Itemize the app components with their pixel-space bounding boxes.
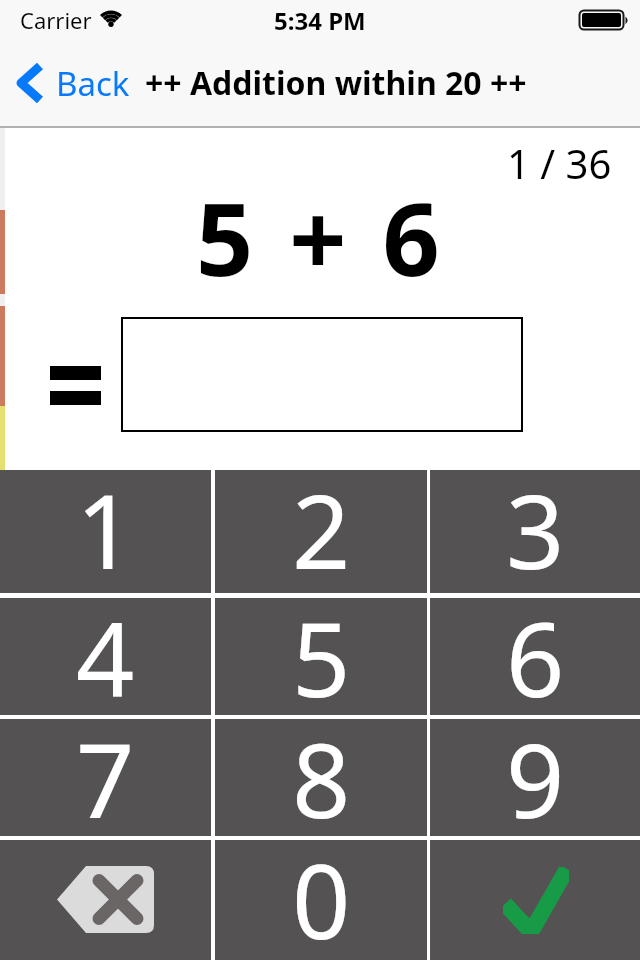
staticText: 1 / 36 (507, 136, 612, 184)
button[interactable] (430, 840, 640, 960)
button[interactable]: Back (0, 40, 145, 126)
staticText: 9 (506, 709, 565, 826)
button[interactable]: 1 (0, 470, 211, 593)
staticText: ++ Addition within 20 ++ (145, 61, 527, 105)
staticText: 5 + 6 (196, 169, 445, 289)
button[interactable]: 0 (215, 840, 427, 960)
staticText: 4 (76, 588, 135, 705)
button[interactable]: 8 (215, 719, 427, 836)
staticText: 1 (76, 460, 135, 583)
staticText: Carrier (20, 5, 92, 35)
staticText: 6 (506, 588, 565, 705)
staticText: 7 (76, 709, 135, 826)
button[interactable]: 6 (430, 598, 640, 715)
button[interactable]: 2 (215, 470, 427, 593)
staticText: 5 (292, 588, 351, 705)
staticText: 8 (292, 709, 351, 826)
button[interactable]: 5 (215, 598, 427, 715)
button[interactable] (121, 317, 523, 432)
button[interactable]: 4 (0, 598, 211, 715)
staticText: 0 (292, 830, 351, 950)
button[interactable]: 3 (430, 470, 640, 593)
staticText: Back (56, 61, 130, 106)
button[interactable] (0, 840, 211, 960)
staticText: 5:34 PM (274, 4, 366, 37)
button[interactable]: 9 (430, 719, 640, 836)
staticText: 3 (506, 460, 565, 583)
button[interactable]: 7 (0, 719, 211, 836)
staticText: 2 (292, 460, 351, 583)
